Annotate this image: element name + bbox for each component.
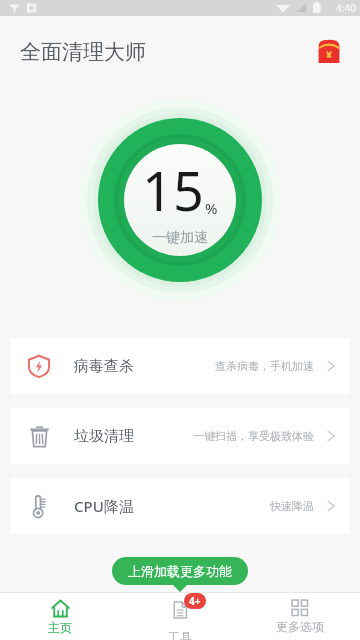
button[interactable]: CPU降温 — [10, 478, 350, 534]
staticText: 快速降温 — [270, 499, 314, 513]
staticText: 一键加速 — [152, 229, 208, 247]
button[interactable]: 4+ — [120, 593, 240, 640]
staticText: 更多选项 — [276, 619, 324, 634]
button[interactable]: 主页 — [0, 593, 120, 640]
staticText: 15 — [142, 153, 204, 227]
button[interactable]: 15 — [76, 96, 284, 304]
button[interactable]: 红包 — [312, 35, 346, 69]
staticText: % — [205, 198, 218, 218]
button[interactable]: 上滑加载更多功能 — [112, 557, 248, 585]
staticText: 上滑加载更多功能 — [128, 563, 232, 579]
button[interactable]: 病毒查杀 — [10, 338, 350, 394]
staticText: 主页 — [48, 620, 72, 635]
staticText: CPU降温 — [74, 496, 134, 516]
staticText: 工具 — [168, 629, 192, 640]
staticText: 垃圾清理 — [74, 427, 134, 446]
staticText: 病毒查杀 — [74, 357, 134, 376]
staticText: 一键扫描，享受极致体验 — [193, 429, 314, 443]
staticText: 4+ — [189, 594, 201, 608]
staticText: 查杀病毒，手机加速 — [215, 359, 314, 373]
staticText: 全面清理大师 — [20, 39, 146, 65]
staticText: 4:40 — [336, 1, 356, 15]
button[interactable]: 更多选项 — [240, 593, 360, 640]
button[interactable]: 垃圾清理 — [10, 408, 350, 464]
